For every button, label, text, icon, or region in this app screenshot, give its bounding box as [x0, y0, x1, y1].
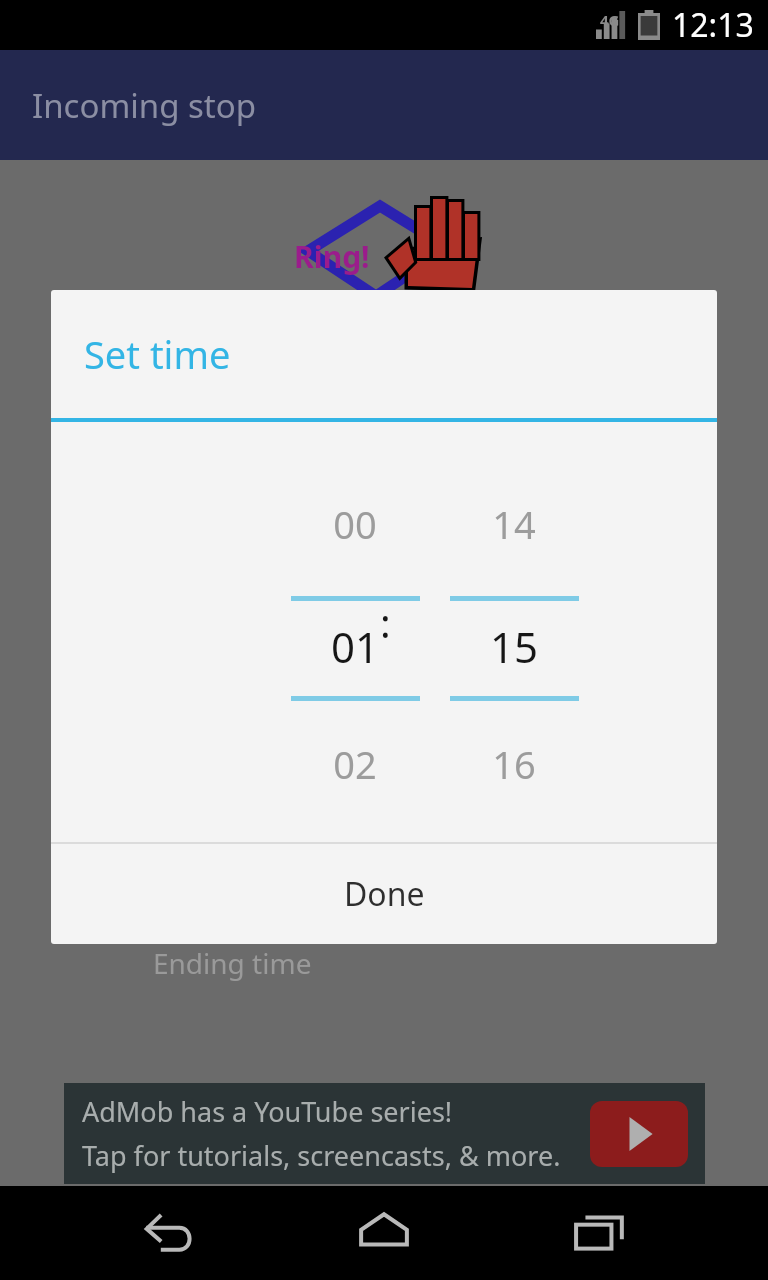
- button[interactable]: 14: [399, 422, 629, 842]
- staticText: AdMob has a YouTube series!: [82, 1093, 453, 1130]
- staticText: Ending time: [153, 944, 312, 982]
- staticText: 15: [399, 618, 629, 675]
- staticText: :: [380, 595, 391, 649]
- staticText: 16: [399, 738, 629, 790]
- staticText: Ring!: [294, 236, 370, 277]
- button[interactable]: AdMob has a YouTube series!: [64, 1083, 705, 1184]
- button[interactable]: Play video: [590, 1101, 688, 1167]
- staticText: 02: [240, 738, 470, 790]
- staticText: 14: [399, 498, 629, 550]
- button[interactable]: Recent apps: [552, 1186, 648, 1280]
- staticText: Tap for tutorials, screencasts, & more.: [82, 1137, 561, 1174]
- button[interactable]: Done: [51, 844, 717, 944]
- staticText: 00: [240, 498, 470, 550]
- button[interactable]: 00: [240, 422, 470, 842]
- staticText: 12:13: [672, 3, 754, 47]
- button[interactable]: Back: [120, 1186, 216, 1280]
- staticText: Set time: [84, 328, 231, 380]
- staticText: 4G: [600, 10, 620, 30]
- staticText: Incoming stop: [32, 83, 257, 128]
- staticText: 01: [240, 618, 470, 675]
- staticText: Done: [344, 872, 425, 916]
- button[interactable]: Home: [336, 1186, 432, 1280]
